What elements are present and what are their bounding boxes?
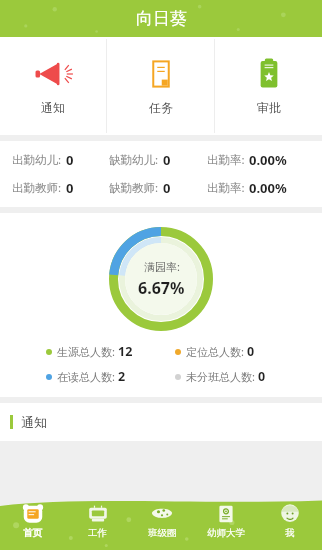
button[interactable]: 首页: [0, 503, 65, 550]
staticText: 满园率:: [144, 259, 180, 274]
button[interactable]: 工作: [65, 503, 130, 550]
staticText: 工作: [88, 527, 107, 539]
button[interactable]: 通知: [0, 403, 322, 441]
staticText: 2: [118, 368, 126, 385]
staticText: 审批: [257, 100, 281, 115]
staticText: 定位总人数:: [186, 344, 244, 359]
staticText: 出勤教师:: [12, 180, 62, 196]
staticText: 在读总人数:: [57, 369, 115, 384]
staticText: 出勤幼儿:: [12, 152, 62, 168]
staticText: 向日葵: [136, 8, 187, 29]
staticText: 0: [258, 368, 266, 385]
staticText: 0: [163, 151, 171, 169]
staticText: 通知: [21, 414, 47, 430]
button[interactable]: 通知: [0, 37, 106, 135]
staticText: 6.67%: [138, 277, 185, 299]
staticText: 通知: [41, 100, 65, 115]
staticText: 0.00%: [249, 179, 287, 197]
staticText: 生源总人数:: [57, 344, 115, 359]
staticText: 班级圈: [148, 527, 177, 539]
staticText: 首页: [23, 527, 42, 539]
staticText: 出勤率:: [207, 152, 245, 168]
staticText: 我: [285, 527, 295, 539]
staticText: 出勤率:: [207, 180, 245, 196]
staticText: 缺勤教师:: [109, 180, 159, 196]
staticText: 未分班总人数:: [186, 369, 255, 384]
staticText: 0.00%: [249, 151, 287, 169]
staticText: 幼师大学: [207, 527, 245, 539]
button[interactable]: 审批: [215, 37, 322, 135]
button[interactable]: 我: [258, 503, 322, 550]
staticText: 0: [247, 343, 255, 360]
button[interactable]: 任务: [107, 37, 214, 135]
button[interactable]: 幼师大学: [194, 503, 258, 550]
staticText: 0: [66, 179, 74, 197]
staticText: 0: [163, 179, 171, 197]
staticText: 12: [118, 343, 133, 360]
staticText: 任务: [149, 100, 173, 115]
staticText: 缺勤幼儿:: [109, 152, 159, 168]
button[interactable]: 班级圈: [130, 503, 194, 550]
staticText: 0: [66, 151, 74, 169]
